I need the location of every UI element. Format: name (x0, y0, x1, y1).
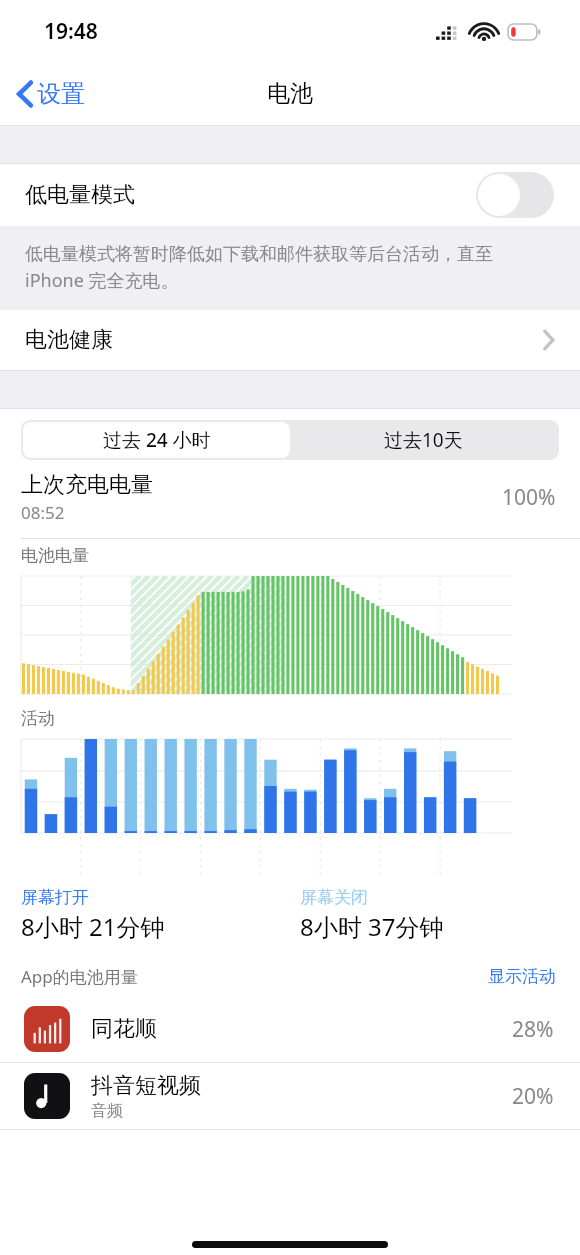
button[interactable]: 过去10天 (290, 422, 557, 458)
button[interactable]: 低电量模式 (0, 164, 580, 226)
staticText: 抖音短视频 (91, 1072, 201, 1100)
staticText: 音频 (91, 1101, 123, 1121)
button[interactable]: 设置 (14, 73, 89, 115)
button[interactable]: 显示活动 (488, 966, 556, 987)
staticText: 100% (502, 483, 556, 512)
button[interactable]: 同花顺 (0, 996, 580, 1062)
staticText: 08:52 (21, 501, 65, 524)
staticText: 低电量模式将暂时降低如下载和邮件获取等后台活动，直至 iPhone 完全充电。 (25, 241, 556, 292)
staticText: App的电池用量 (21, 965, 138, 988)
staticText: 过去 24 小时 (103, 427, 211, 453)
staticText: 8小时 21分钟 (21, 910, 165, 943)
staticText: 19:48 (44, 17, 98, 46)
staticText: 28% (512, 1015, 554, 1044)
staticText: 显示活动 (488, 966, 556, 987)
staticText: 20% (512, 1082, 554, 1111)
button[interactable]: 电池健康 (0, 310, 580, 370)
staticText: 电池电量 (21, 545, 89, 566)
staticText: 设置 (37, 79, 85, 109)
staticText: 屏幕打开 (21, 887, 89, 908)
staticText: 同花顺 (91, 1015, 157, 1043)
staticText: 电池 (267, 79, 313, 108)
staticText: 过去10天 (384, 427, 463, 453)
staticText: 8小时 37分钟 (300, 910, 444, 943)
button[interactable]: 低电量模式开关 (476, 172, 554, 218)
staticText: 上次充电电量 (21, 471, 153, 499)
button[interactable]: 抖音短视频 (0, 1063, 580, 1129)
staticText: 活动 (21, 708, 55, 729)
button[interactable]: 过去 24 小时 (23, 422, 290, 458)
staticText: 电池健康 (25, 326, 113, 354)
staticText: 低电量模式 (25, 181, 135, 209)
staticText: 屏幕关闭 (300, 887, 368, 908)
